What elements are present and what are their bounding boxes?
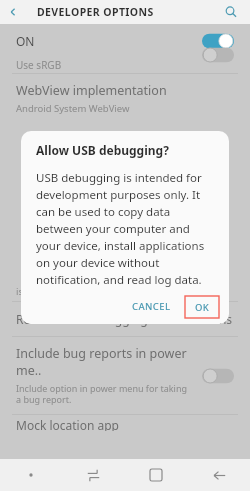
button[interactable]: is connected.	[0, 289, 250, 301]
button[interactable]: Revoke USB debugging authorizations	[0, 302, 250, 336]
button[interactable]: Home	[143, 462, 169, 488]
button[interactable]: ON	[0, 24, 250, 57]
staticText: ON	[16, 33, 35, 49]
button[interactable]: Search	[220, 1, 242, 23]
staticText: Include option in power menu for taking …	[16, 382, 187, 406]
staticText: Mock location app	[16, 417, 119, 431]
staticText: CANCEL	[132, 300, 171, 313]
button[interactable]: Include bug reports in power me..	[0, 337, 250, 414]
button[interactable]: Mock location app	[0, 415, 250, 429]
button[interactable]: Use sRGB	[0, 57, 250, 73]
button[interactable]: WebView implementation	[0, 74, 250, 123]
button[interactable]: CANCEL	[125, 294, 178, 319]
button[interactable]: Recents	[80, 462, 106, 488]
staticText: USB debugging is intended for developmen…	[36, 170, 216, 287]
staticText: Include bug reports in power me..	[16, 345, 196, 379]
button[interactable]: Back	[0, 0, 26, 24]
button[interactable]: Back	[206, 462, 232, 488]
staticText: OK	[195, 301, 210, 314]
button[interactable]: OK	[185, 296, 219, 318]
staticText: WebView implementation	[16, 82, 167, 99]
staticText: DEVELOPER OPTIONS	[37, 5, 154, 19]
staticText: Revoke USB debugging authorizations	[16, 311, 233, 327]
staticText: Use sRGB	[16, 58, 62, 72]
staticText: is connected.	[16, 285, 75, 297]
staticText: Android System WebView	[16, 102, 130, 115]
staticText: Allow USB debugging?	[36, 142, 169, 158]
button[interactable]: Menu	[18, 462, 44, 488]
